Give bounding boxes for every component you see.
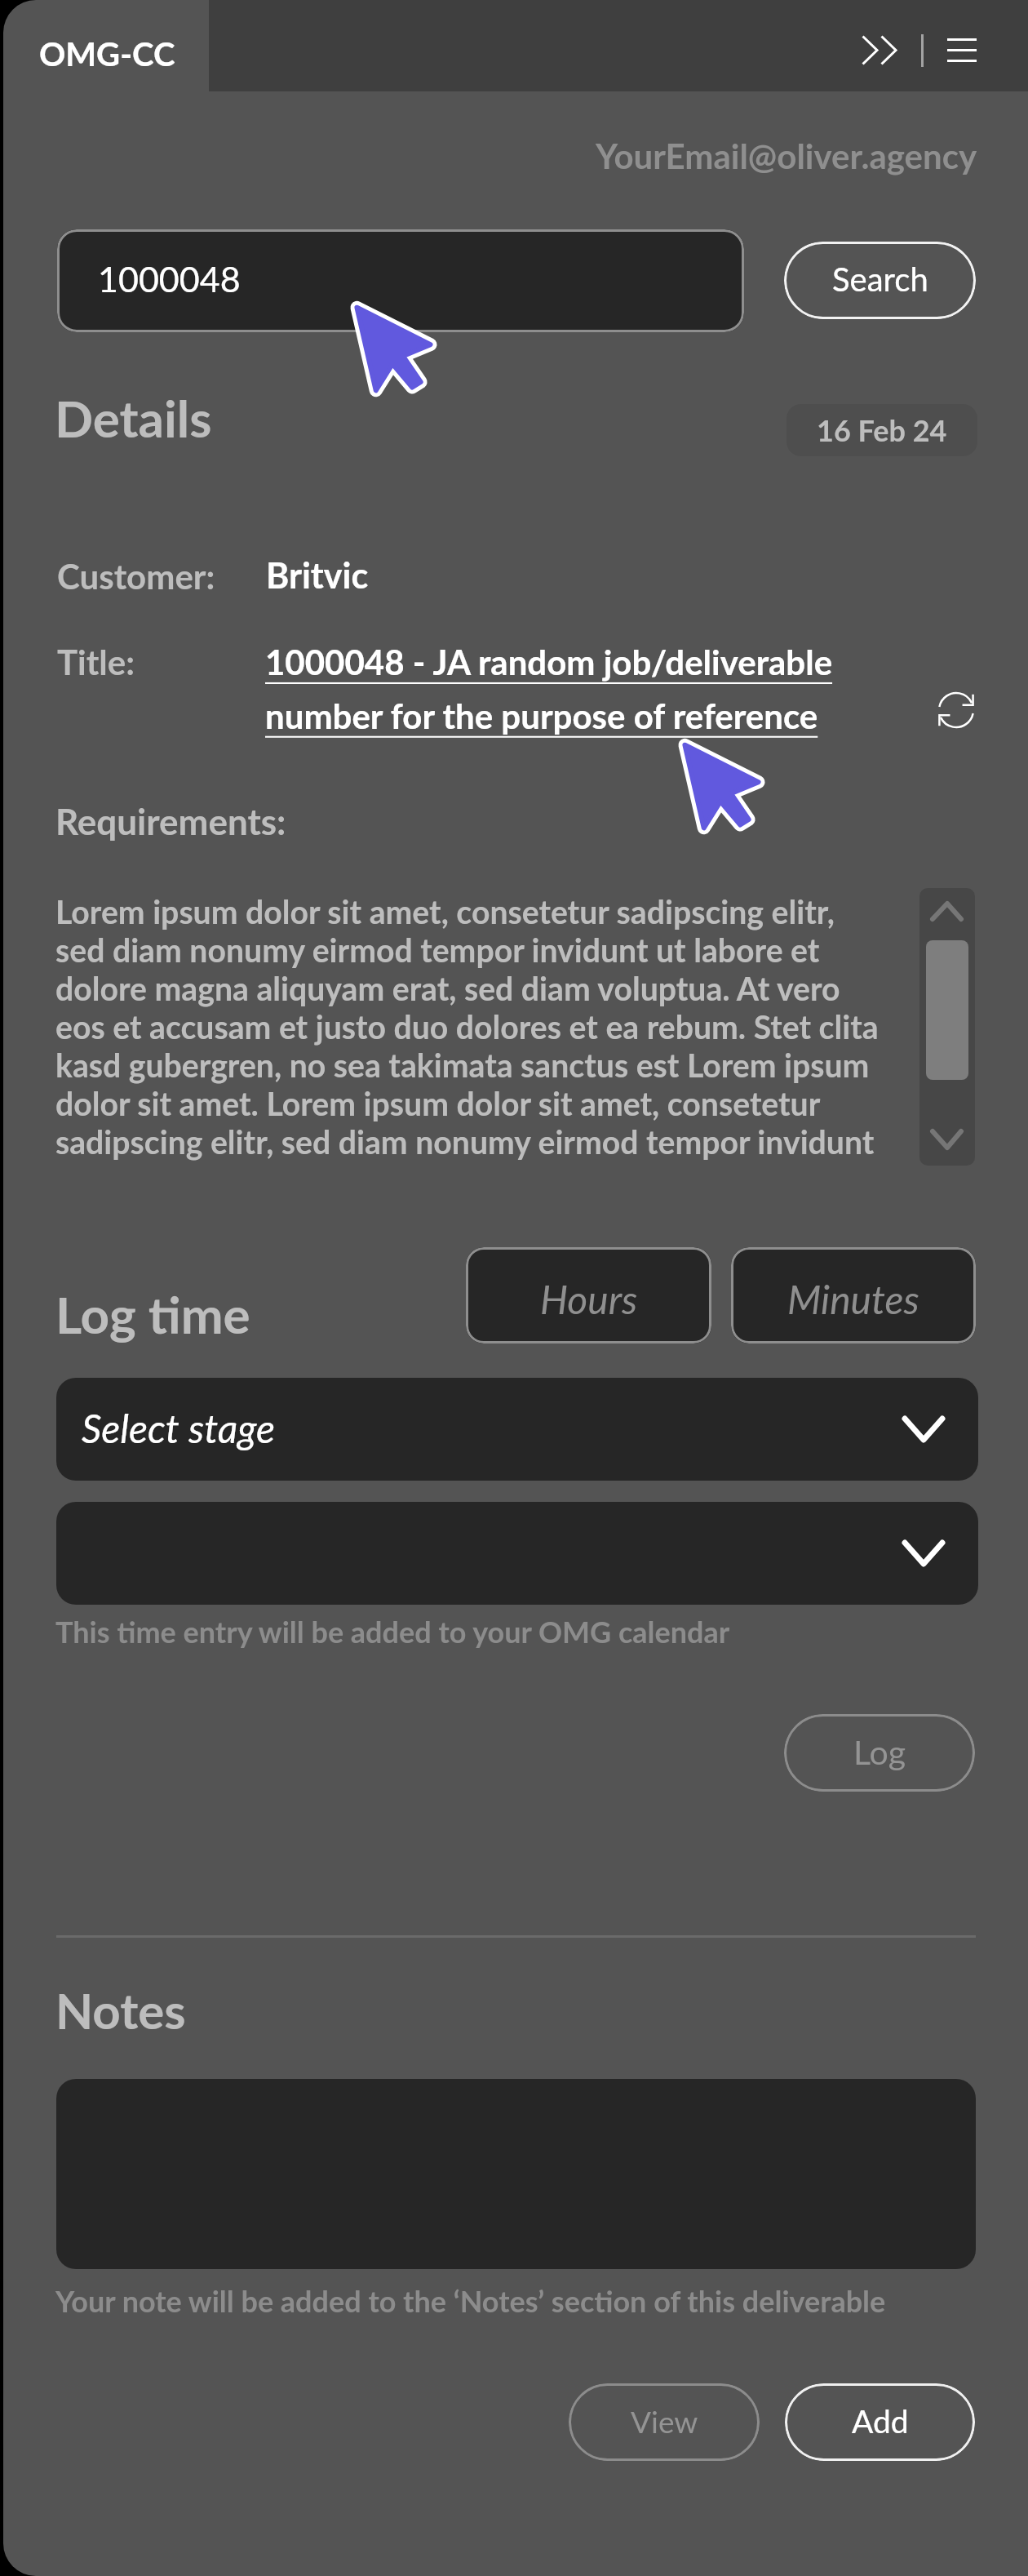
staticText: Add: [852, 2402, 909, 2441]
staticText: Minutes: [787, 1276, 919, 1323]
staticText: Select stage: [82, 1405, 275, 1452]
button[interactable]: 16 Feb 24: [787, 404, 977, 456]
staticText: Title:: [57, 642, 135, 682]
button[interactable]: 1000048: [57, 229, 744, 332]
button[interactable]: Expand: [844, 18, 915, 82]
staticText: This time entry will be added to your OM…: [55, 1614, 730, 1649]
button[interactable]: OMG-CC: [3, 0, 209, 91]
staticText: Details: [55, 388, 212, 448]
staticText: Lorem ipsum dolor sit amet, consetetur s…: [55, 892, 888, 1161]
staticText: Your note will be added to the ‘Notes’ s…: [55, 2283, 886, 2318]
staticText: YourEmail@oliver.agency: [596, 135, 977, 176]
staticText: Log: [853, 1732, 906, 1772]
staticText: Notes: [55, 1981, 186, 2040]
staticText: Customer:: [57, 556, 215, 597]
button[interactable]: 1000048 - JA random job/deliverable numb…: [265, 642, 861, 736]
staticText: 16 Feb 24: [817, 412, 947, 447]
button[interactable]: Select stage: [56, 1378, 978, 1481]
button[interactable]: View: [569, 2383, 760, 2461]
staticText: Britvic: [266, 554, 369, 597]
button[interactable]: Hours: [466, 1247, 711, 1344]
staticText: Log time: [55, 1284, 250, 1344]
button[interactable]: Minutes: [731, 1247, 976, 1344]
button[interactable]: [56, 1502, 978, 1605]
staticText: 1000048: [98, 258, 241, 300]
staticText: Hours: [540, 1276, 638, 1323]
button[interactable]: Menu: [933, 18, 991, 82]
button[interactable]: Scroll: [919, 888, 975, 1166]
button[interactable]: Search: [784, 242, 976, 319]
button[interactable]: Add: [785, 2383, 975, 2461]
staticText: OMG-CC: [39, 34, 175, 73]
button[interactable]: Refresh: [927, 681, 986, 739]
staticText: View: [631, 2403, 698, 2439]
staticText: Requirements:: [55, 800, 286, 843]
staticText: Search: [832, 260, 928, 299]
button[interactable]: Log: [784, 1714, 975, 1792]
